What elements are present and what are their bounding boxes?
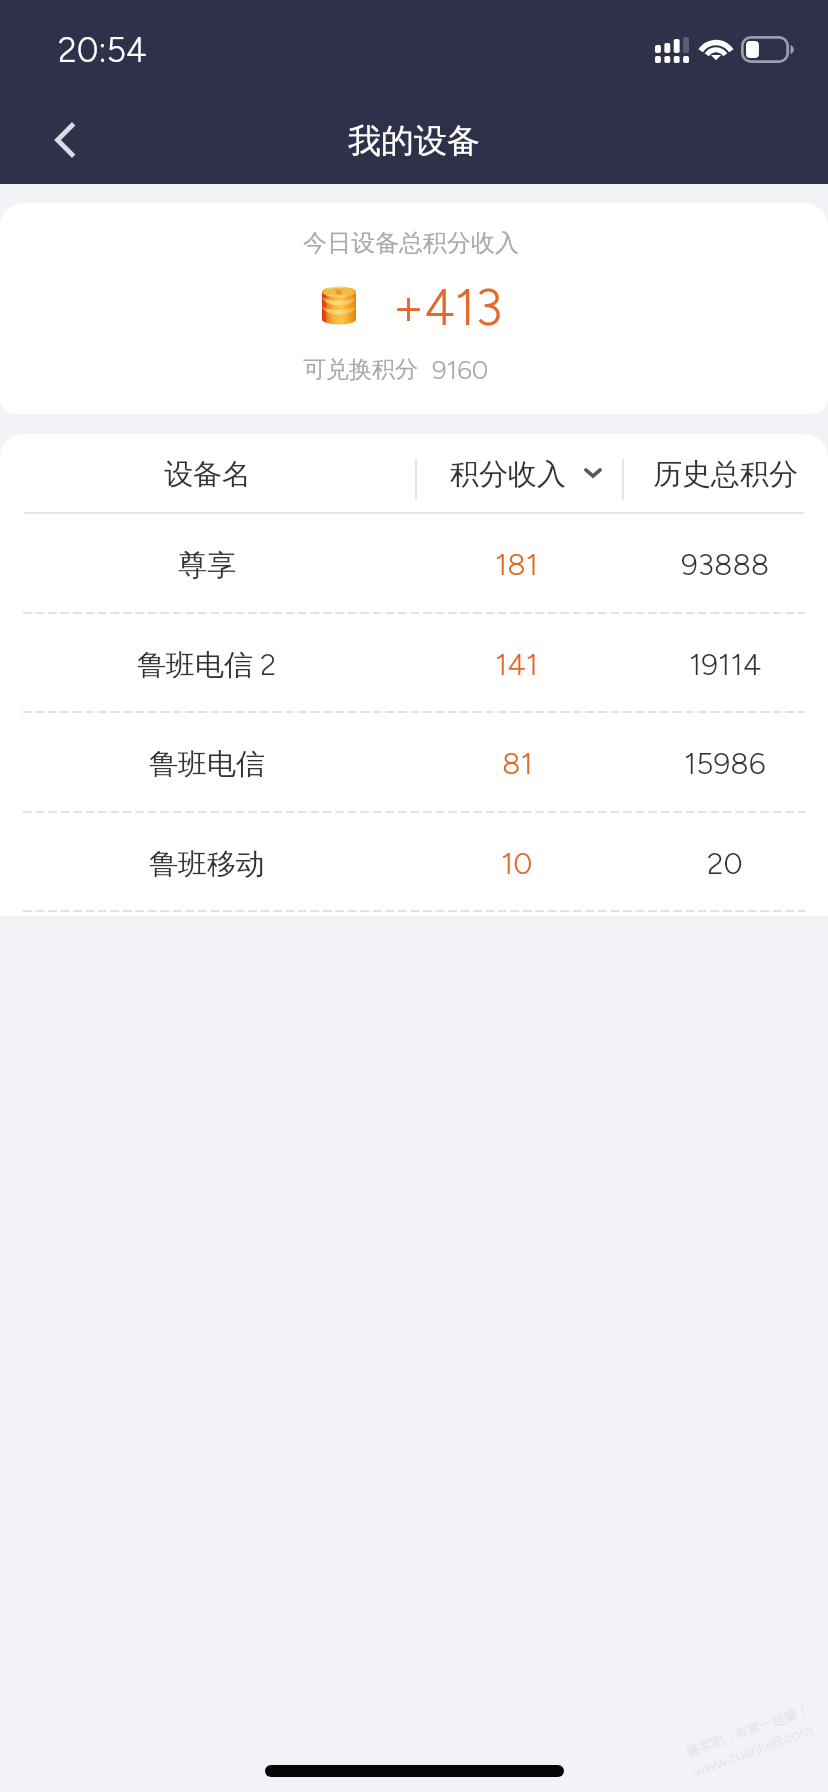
- staticText: 141: [495, 646, 539, 682]
- button[interactable]: Back: [20, 97, 106, 183]
- staticText: 尊享: [178, 547, 236, 584]
- staticText: 可兑换积分: [303, 355, 418, 384]
- staticText: 181: [495, 546, 539, 582]
- staticText: 鲁班电信 2: [137, 647, 277, 684]
- staticText: 历史总积分: [653, 456, 798, 493]
- button[interactable]: 积分收入: [419, 446, 622, 510]
- staticText: 10: [501, 845, 533, 881]
- staticText: +413: [393, 277, 503, 337]
- staticText: 赚客吧，有奖一起赚！: [684, 1700, 812, 1760]
- staticText: 鲁班移动: [149, 846, 265, 883]
- staticText: 9160: [432, 354, 489, 385]
- staticText: 81: [502, 745, 533, 781]
- staticText: 我的设备: [348, 120, 480, 162]
- staticText: 今日设备总积分收入: [303, 228, 519, 258]
- button[interactable]: 尊享: [0, 516, 828, 614]
- staticText: 20: [707, 845, 743, 881]
- staticText: 积分收入: [450, 456, 566, 493]
- staticText: 93888: [681, 546, 770, 582]
- staticText: www.zuanke8.com: [691, 1720, 815, 1780]
- staticText: 15986: [684, 745, 766, 781]
- staticText: 20:54: [58, 30, 147, 71]
- staticText: 设备名: [164, 456, 251, 493]
- staticText: 鲁班电信: [149, 746, 265, 783]
- staticText: 19114: [689, 646, 762, 682]
- button[interactable]: 鲁班电信 2: [0, 616, 828, 714]
- button[interactable]: 鲁班移动: [0, 815, 828, 913]
- button[interactable]: 鲁班电信: [0, 715, 828, 813]
